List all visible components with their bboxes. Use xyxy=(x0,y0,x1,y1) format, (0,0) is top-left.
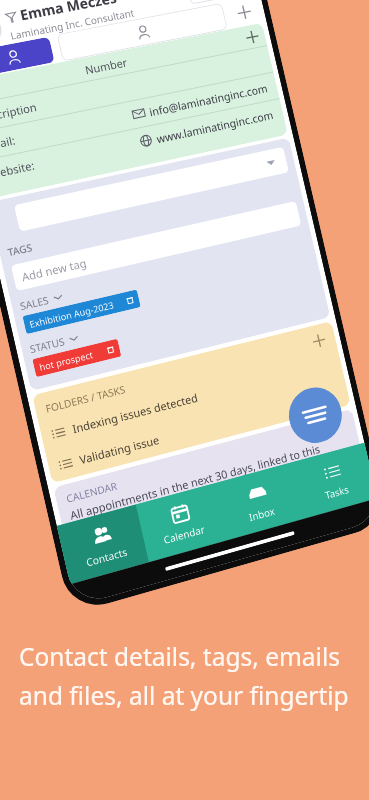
button[interactable]: Validating issue xyxy=(57,385,342,473)
button[interactable]: Contact xyxy=(56,3,228,62)
staticText: Website: xyxy=(0,157,36,182)
button[interactable]: Website dropdown xyxy=(0,137,330,391)
staticText: FOLDERS / TASKS xyxy=(44,382,127,416)
staticText: Validating issue xyxy=(78,432,161,467)
button[interactable]: Calendar xyxy=(136,483,227,562)
button[interactable]: Contacts xyxy=(57,504,149,584)
button[interactable]: Indexing issues detected xyxy=(50,355,335,442)
staticText: TAGS xyxy=(6,240,34,259)
staticText: Email: xyxy=(0,132,17,154)
staticText: Emma Meczes xyxy=(18,0,119,24)
button[interactable]: Exhibition Aug-2023 xyxy=(22,289,141,334)
staticText: www.laminatinginc.com xyxy=(155,107,275,146)
staticText: Contact details, tags, emails xyxy=(19,640,340,673)
staticText: Exhibition Aug-2023 xyxy=(28,298,115,330)
button[interactable]: Add new tag xyxy=(11,201,301,291)
button[interactable]: Menu xyxy=(283,382,347,449)
button[interactable]: Files and notes xyxy=(185,0,249,5)
staticText: Calendar xyxy=(162,522,207,547)
staticText: Laminating Inc. Consultant xyxy=(9,6,136,43)
staticText: Add new tag xyxy=(20,255,88,284)
button[interactable]: Add folder xyxy=(307,328,330,352)
button[interactable]: Add xyxy=(232,0,257,25)
button[interactable]: FOLDERS / TASKS xyxy=(32,321,351,483)
button[interactable]: hot prospect xyxy=(32,339,121,377)
staticText: Indexing issues detected xyxy=(71,389,200,436)
button[interactable]: CALENDAR xyxy=(53,409,366,553)
staticText: Tasks xyxy=(324,482,351,502)
staticText: Inbox xyxy=(247,504,276,524)
button[interactable]: Add number xyxy=(240,25,263,48)
button[interactable]: Inbox xyxy=(214,463,303,540)
staticText: contact, are shown here. xyxy=(72,491,200,540)
staticText: info@laminatinginc.com xyxy=(148,80,269,119)
button[interactable]: Number xyxy=(0,23,288,199)
staticText: Number xyxy=(83,54,128,77)
staticText: All appointments in the next 30 days, li… xyxy=(68,441,322,523)
staticText: hot prospect xyxy=(38,348,94,373)
button[interactable]: Tasks xyxy=(290,443,369,519)
staticText: CALENDAR xyxy=(65,478,118,506)
button[interactable]: Website dropdown xyxy=(14,147,289,232)
staticText: Contacts xyxy=(85,544,128,570)
staticText: STATUS xyxy=(28,334,66,356)
staticText: SALES xyxy=(18,293,51,313)
button[interactable]: Add contact xyxy=(0,37,55,77)
staticText: and files, all at your fingertip xyxy=(19,679,349,712)
staticText: Description xyxy=(0,99,39,126)
